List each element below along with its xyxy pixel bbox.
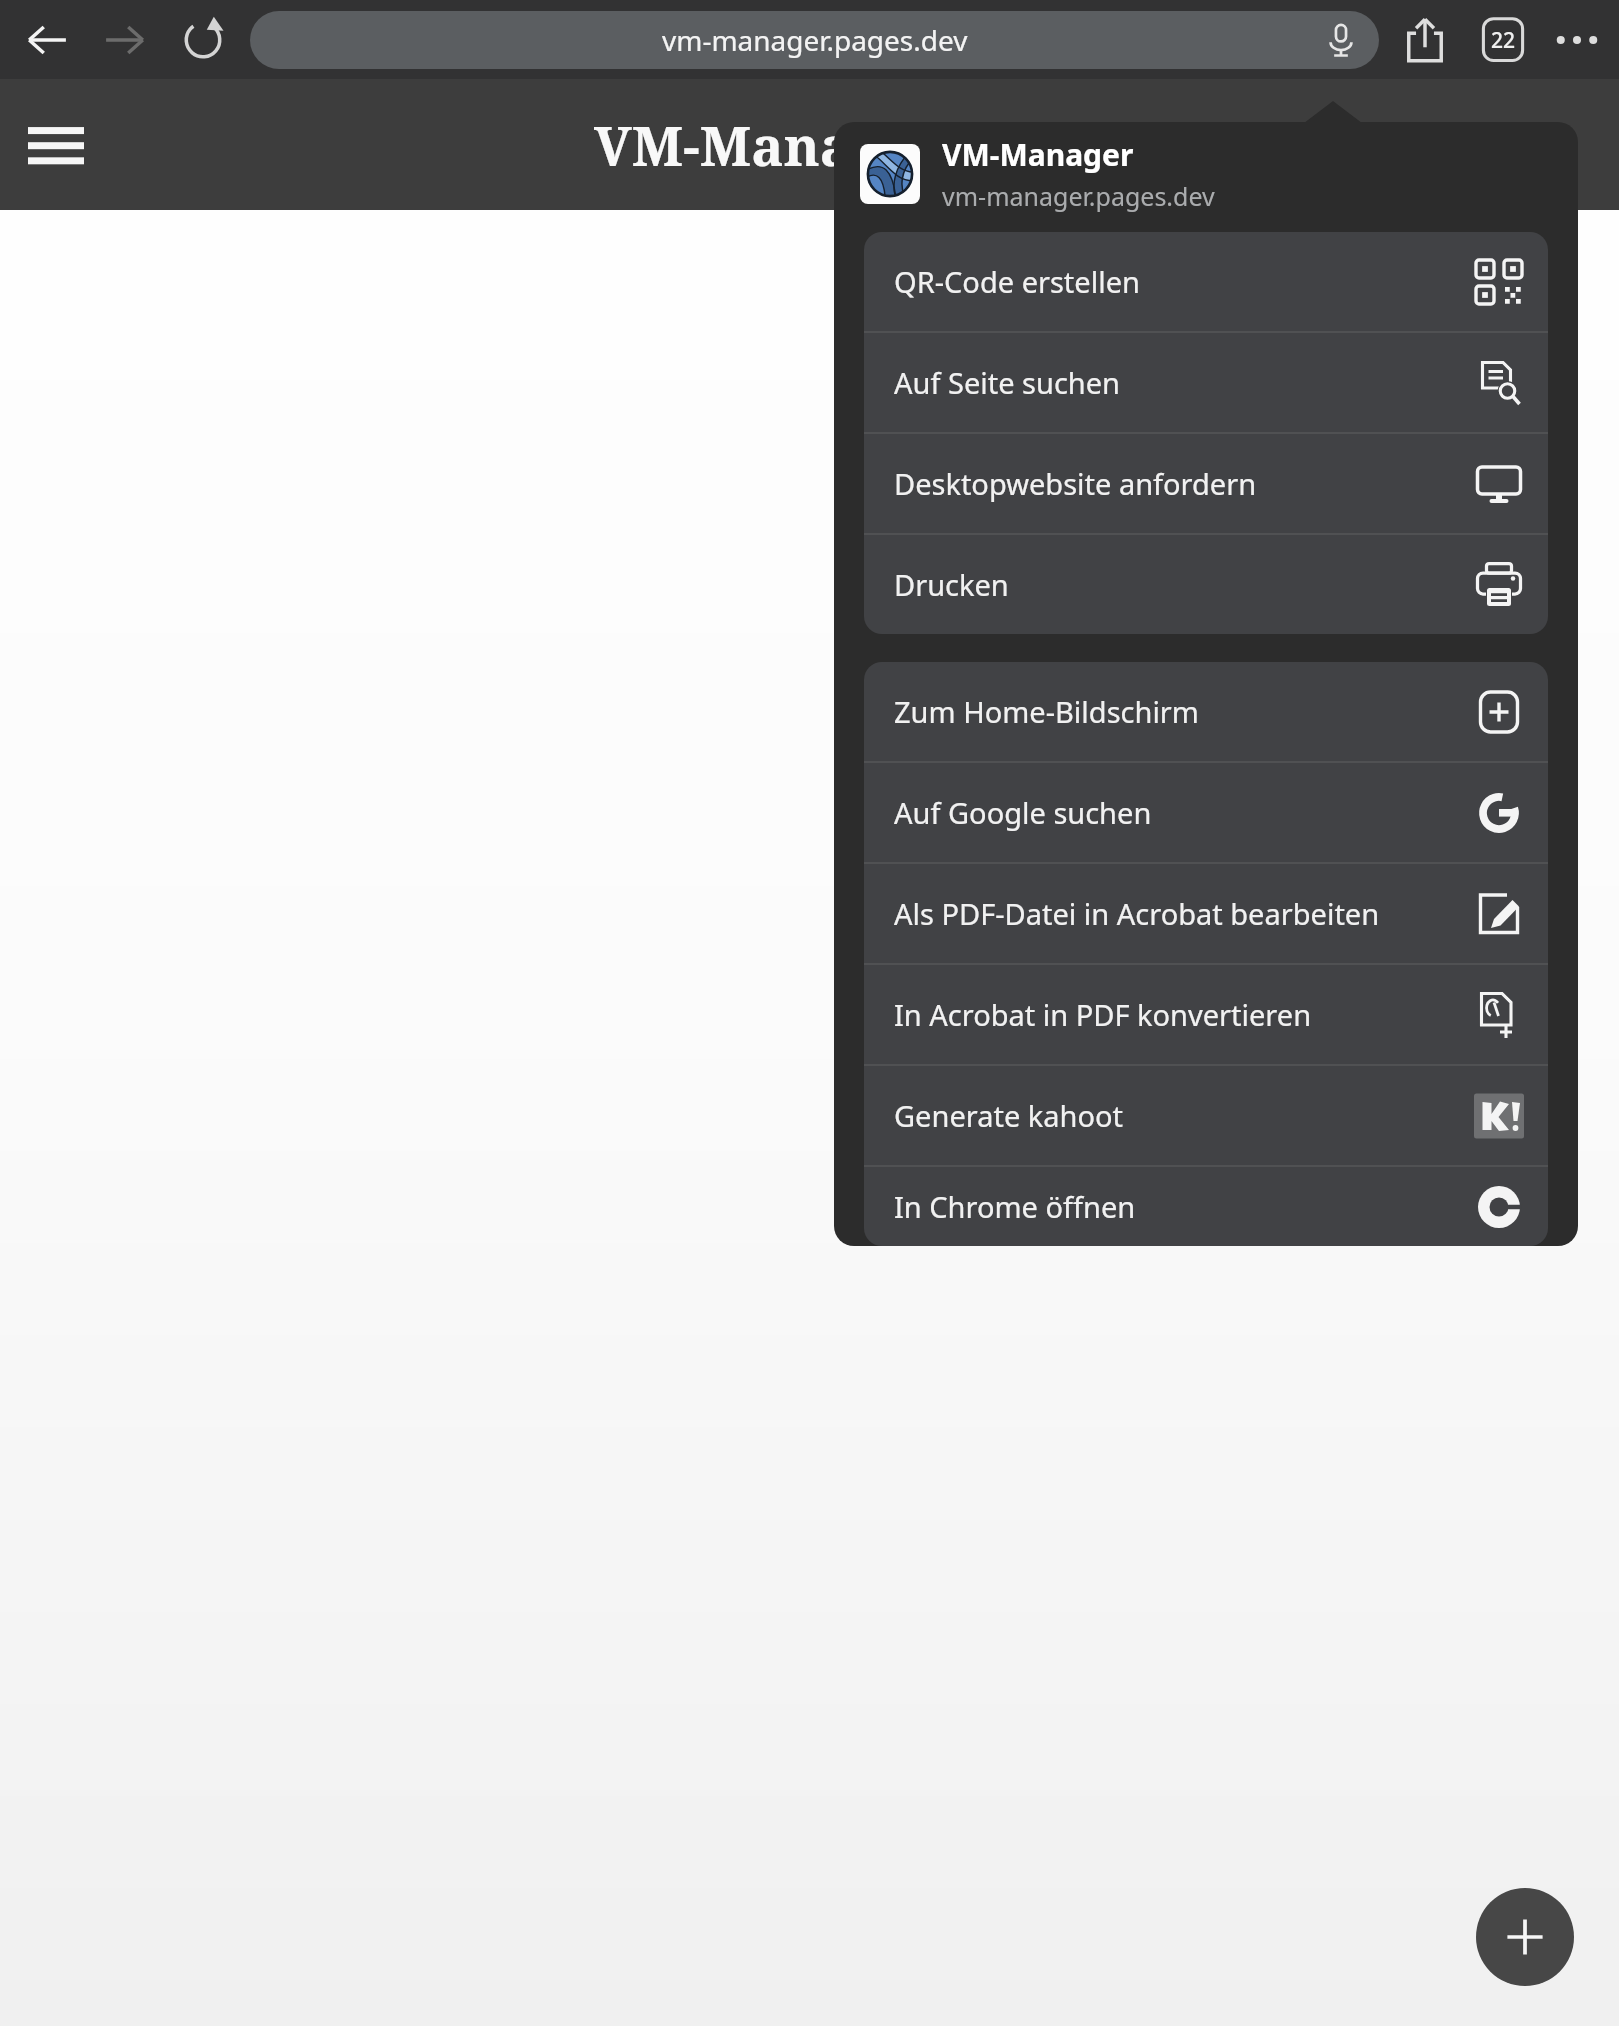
staticText: Generate kahoot [894, 1096, 1474, 1135]
button[interactable]: Reload [176, 13, 230, 67]
button[interactable]: Desktopwebsite anfordern [864, 434, 1548, 533]
staticText: VM-Manager [942, 134, 1134, 175]
button[interactable]: Forward [98, 13, 152, 67]
staticText: Auf Seite suchen [894, 363, 1474, 402]
button[interactable]: More options [1549, 12, 1605, 68]
button[interactable]: Add [1476, 1888, 1574, 1986]
staticText: Als PDF-Datei in Acrobat bearbeiten [894, 894, 1474, 933]
button[interactable]: Zum Home-Bildschirm [864, 662, 1548, 761]
button[interactable]: VM-Manager [834, 122, 1578, 225]
staticText: Desktopwebsite anfordern [894, 464, 1474, 503]
button[interactable]: Generate kahoot [864, 1066, 1548, 1165]
button[interactable]: QR-Code erstellen [864, 232, 1548, 331]
staticText: VM-Manager [594, 108, 942, 182]
button[interactable]: Share [1397, 12, 1453, 68]
button[interactable]: Tabs, 22 open [1475, 12, 1531, 68]
staticText: In Acrobat in PDF konvertieren [894, 995, 1474, 1034]
button[interactable]: Als PDF-Datei in Acrobat bearbeiten [864, 864, 1548, 963]
staticText: vm-manager.pages.dev [942, 179, 1215, 213]
button[interactable]: Back [20, 13, 74, 67]
button[interactable]: Auf Seite suchen [864, 333, 1548, 432]
button[interactable]: Menu [20, 109, 92, 181]
staticText: In Chrome öffnen [894, 1187, 1474, 1226]
button[interactable]: vm-manager.pages.dev [250, 11, 1379, 69]
button[interactable]: In Acrobat in PDF konvertieren [864, 965, 1548, 1064]
button[interactable]: Voice search [1323, 22, 1359, 58]
staticText: QR-Code erstellen [894, 262, 1474, 301]
staticText: Drucken [894, 565, 1474, 604]
button[interactable]: Auf Google suchen [864, 763, 1548, 862]
staticText: Auf Google suchen [894, 793, 1474, 832]
staticText: 22 [1491, 26, 1516, 55]
button[interactable]: In Chrome öffnen [864, 1167, 1548, 1246]
button[interactable]: Drucken [864, 535, 1548, 634]
staticText: vm-manager.pages.dev [662, 21, 968, 59]
staticText: Zum Home-Bildschirm [894, 692, 1474, 731]
